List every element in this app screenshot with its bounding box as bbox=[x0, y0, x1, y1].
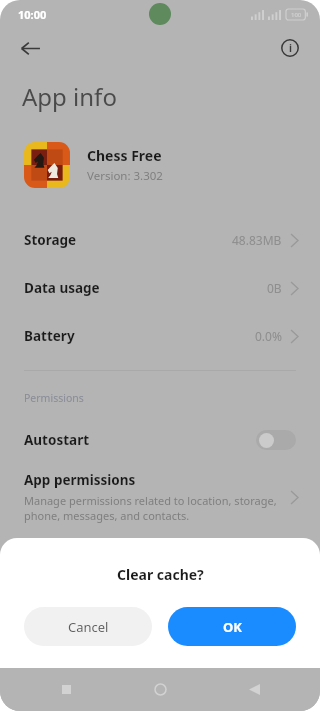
staticText: OK bbox=[223, 618, 242, 636]
staticText: 0B bbox=[267, 280, 282, 296]
button[interactable]: Storage bbox=[0, 216, 320, 264]
button[interactable]: Battery bbox=[0, 312, 320, 360]
staticText: Cancel bbox=[68, 618, 109, 636]
staticText: Storage bbox=[24, 231, 77, 249]
staticText: 10:00 bbox=[18, 7, 47, 22]
staticText: Clear cache? bbox=[117, 565, 204, 584]
staticText: Data usage bbox=[24, 279, 100, 297]
button[interactable]: App details bbox=[270, 28, 310, 68]
button[interactable]: Data usage bbox=[0, 264, 320, 312]
button[interactable]: Cancel bbox=[24, 607, 152, 646]
button[interactable]: Back bbox=[230, 668, 278, 711]
button[interactable]: Back bbox=[10, 28, 50, 68]
button[interactable]: Recents bbox=[42, 668, 90, 711]
staticText: Manage permissions related to location, … bbox=[24, 493, 277, 523]
staticText: 48.83MB bbox=[232, 232, 282, 248]
staticText: Battery bbox=[24, 327, 75, 345]
staticText: i bbox=[289, 41, 292, 55]
button[interactable]: OK bbox=[168, 607, 296, 646]
staticText: Permissions bbox=[24, 391, 84, 405]
staticText: Version: 3.302 bbox=[87, 168, 163, 184]
staticText: App permissions bbox=[24, 471, 136, 489]
staticText: App info bbox=[22, 80, 117, 113]
button[interactable]: Autostart toggle bbox=[256, 430, 296, 450]
staticText: Autostart bbox=[24, 431, 90, 449]
staticText: 0.0% bbox=[255, 328, 282, 344]
button[interactable]: App permissions bbox=[0, 471, 320, 523]
button[interactable]: Home bbox=[136, 668, 184, 711]
button[interactable]: Autostart bbox=[0, 423, 320, 457]
staticText: 100 bbox=[291, 11, 302, 19]
staticText: Chess Free bbox=[87, 146, 162, 165]
